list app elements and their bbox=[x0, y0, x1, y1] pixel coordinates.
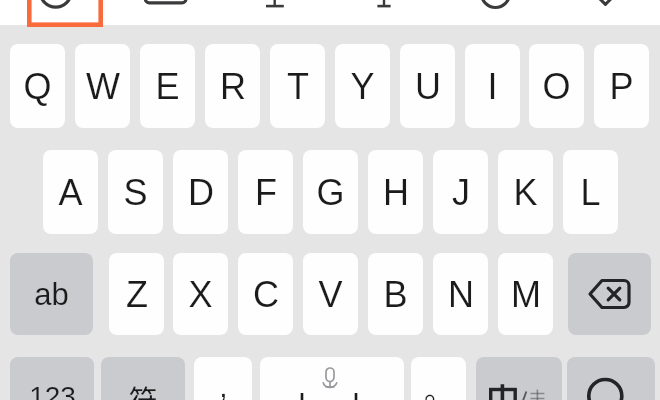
staticText: B bbox=[383, 274, 408, 314]
button[interactable]: H bbox=[368, 150, 423, 234]
button[interactable]: L bbox=[563, 150, 618, 234]
button[interactable]: W bbox=[75, 44, 130, 128]
button[interactable]: C bbox=[238, 253, 293, 335]
button[interactable]: Z bbox=[109, 253, 164, 335]
button[interactable]: 符 bbox=[101, 357, 185, 400]
staticText: G bbox=[316, 172, 345, 212]
button[interactable]: I bbox=[465, 44, 520, 128]
staticText: O bbox=[542, 66, 571, 106]
button[interactable]: A bbox=[43, 150, 98, 234]
button[interactable]: Backspace bbox=[568, 253, 651, 335]
button[interactable]: 。 bbox=[411, 357, 466, 400]
button[interactable]: S bbox=[108, 150, 163, 234]
staticText: K bbox=[513, 172, 538, 212]
staticText: X bbox=[188, 274, 213, 314]
button[interactable]: , bbox=[194, 357, 252, 400]
staticText: W bbox=[86, 66, 120, 106]
button[interactable]: G bbox=[303, 150, 358, 234]
button[interactable]: P bbox=[594, 44, 649, 128]
staticText: D bbox=[188, 172, 214, 212]
staticText: C bbox=[253, 274, 279, 314]
staticText: N bbox=[448, 274, 474, 314]
button[interactable]: 123 bbox=[10, 357, 94, 400]
button[interactable]: B bbox=[368, 253, 423, 335]
button[interactable]: K bbox=[498, 150, 553, 234]
staticText: , bbox=[219, 370, 228, 400]
staticText: V bbox=[318, 274, 343, 314]
staticText: M bbox=[511, 274, 541, 314]
button[interactable]: Space bbox=[260, 357, 404, 400]
staticText: 符 bbox=[128, 377, 158, 400]
staticText: U bbox=[415, 66, 441, 106]
button[interactable]: M bbox=[498, 253, 553, 335]
button[interactable]: J bbox=[433, 150, 488, 234]
button[interactable]: X bbox=[173, 253, 228, 335]
button[interactable]: V bbox=[303, 253, 358, 335]
staticText: S bbox=[123, 172, 148, 212]
staticText: P bbox=[609, 66, 634, 106]
button[interactable]: Switch input language bbox=[476, 357, 562, 400]
staticText: L bbox=[580, 172, 601, 212]
staticText: Y bbox=[350, 66, 375, 106]
button[interactable]: O bbox=[529, 44, 584, 128]
button[interactable]: N bbox=[433, 253, 488, 335]
button[interactable]: R bbox=[205, 44, 260, 128]
button[interactable]: E bbox=[140, 44, 195, 128]
button[interactable]: U bbox=[400, 44, 455, 128]
staticText: E bbox=[155, 66, 180, 106]
button[interactable]: Enter bbox=[567, 357, 655, 400]
staticText: F bbox=[255, 172, 277, 212]
staticText: Z bbox=[126, 274, 148, 314]
button[interactable]: Y bbox=[335, 44, 390, 128]
staticText: J bbox=[452, 172, 470, 212]
staticText: Q bbox=[23, 66, 52, 106]
button[interactable]: Q bbox=[10, 44, 65, 128]
button[interactable]: Highlighted emoji button bbox=[27, 0, 103, 27]
button[interactable]: T bbox=[270, 44, 325, 128]
staticText: A bbox=[58, 172, 83, 212]
button[interactable]: D bbox=[173, 150, 228, 234]
button[interactable]: F bbox=[238, 150, 293, 234]
staticText: ab bbox=[34, 277, 69, 312]
staticText: 123 bbox=[29, 381, 76, 400]
staticText: R bbox=[220, 66, 246, 106]
button[interactable]: ab bbox=[10, 253, 93, 335]
staticText: H bbox=[383, 172, 409, 212]
staticText: I bbox=[487, 66, 498, 106]
staticText: 。 bbox=[424, 367, 454, 400]
staticText: T bbox=[287, 66, 309, 106]
